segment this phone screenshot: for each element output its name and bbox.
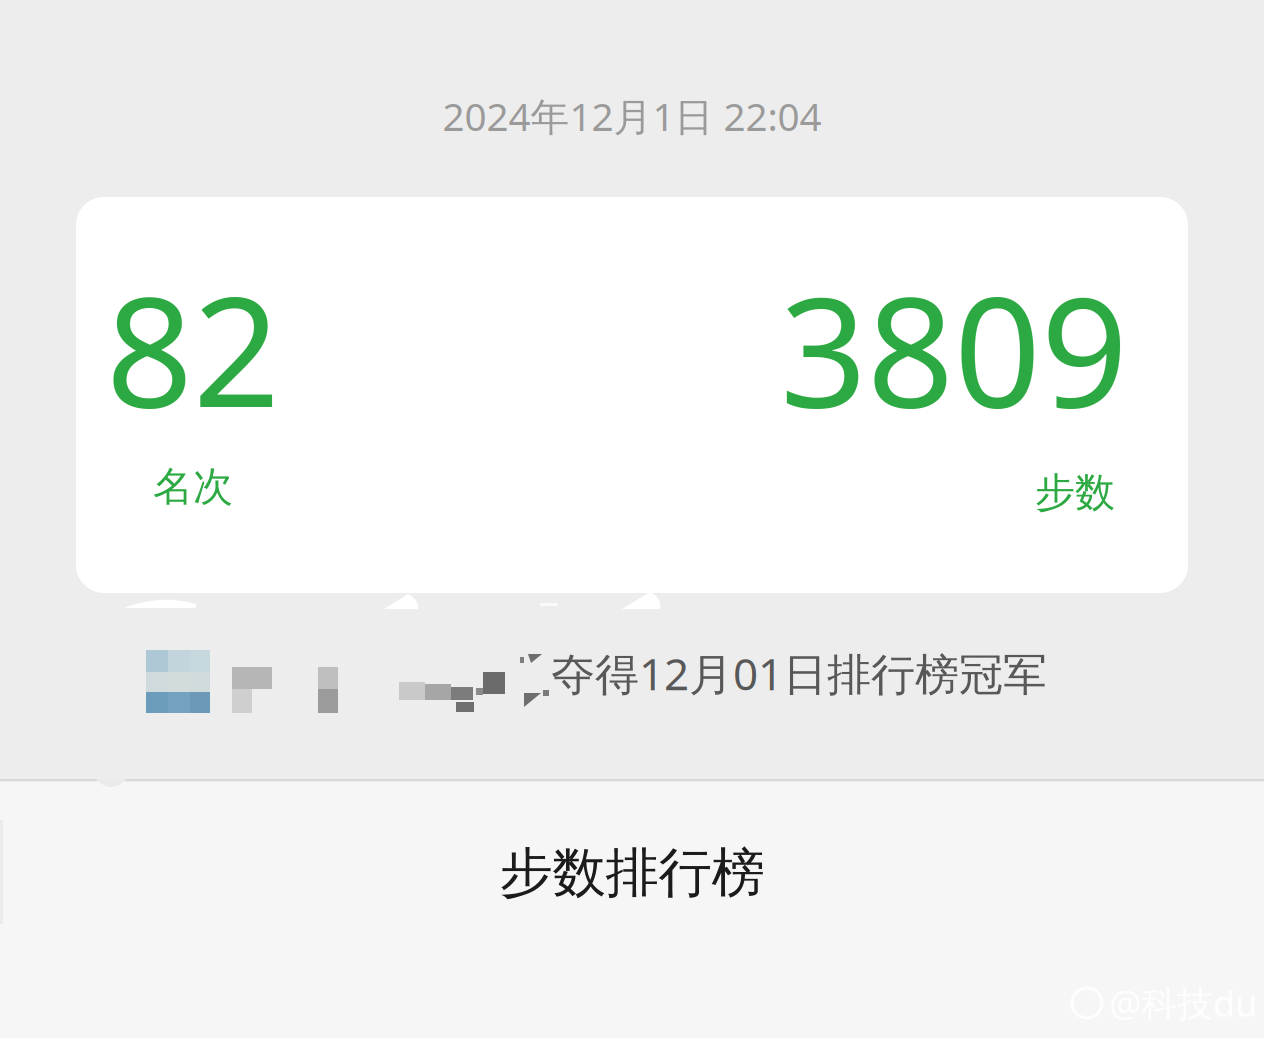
staticText: 步数排行榜 bbox=[499, 840, 764, 906]
staticText: 82 bbox=[106, 247, 280, 449]
staticText: 3809 bbox=[780, 247, 1128, 449]
button[interactable]: 夺得12月01日排行榜冠军 bbox=[0, 0, 1264, 1038]
button[interactable]: 82 bbox=[76, 197, 1188, 593]
staticText: 2024年12月1日 22:04 bbox=[442, 90, 821, 142]
staticText: 步数 bbox=[1035, 468, 1115, 517]
staticText: 夺得12月01日排行榜冠军 bbox=[551, 644, 1047, 702]
staticText: 名次 bbox=[153, 462, 233, 511]
